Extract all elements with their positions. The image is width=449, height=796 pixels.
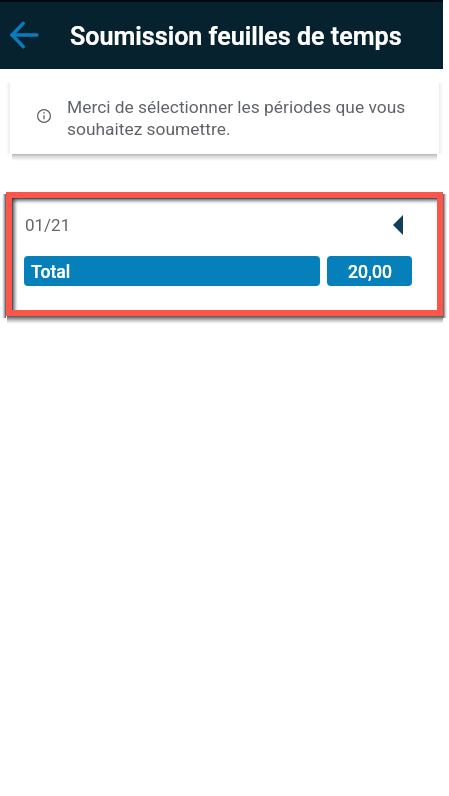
staticText: Soumission feuilles de temps — [70, 22, 402, 51]
button[interactable]: 01/21 — [12, 198, 437, 310]
staticText: 01/21 — [25, 215, 71, 235]
button[interactable]: Total — [24, 256, 320, 286]
button[interactable]: Back — [2, 13, 46, 57]
staticText: 20,00 — [348, 262, 392, 283]
button[interactable]: 20,00 — [327, 256, 412, 286]
staticText: Total — [31, 262, 71, 283]
staticText: Merci de sélectionner les périodes que v… — [67, 97, 425, 139]
